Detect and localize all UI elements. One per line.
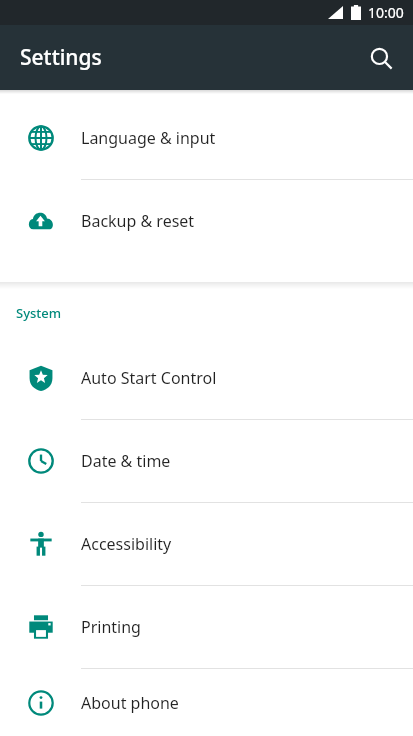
staticText: Auto Start Control (81, 367, 217, 389)
staticText: Printing (81, 616, 141, 638)
button[interactable]: Date & time (0, 420, 413, 502)
button[interactable]: Backup & reset (0, 180, 413, 262)
button[interactable]: About phone (0, 669, 413, 736)
staticText: Backup & reset (81, 210, 195, 232)
button[interactable]: Search (357, 34, 405, 82)
staticText: Settings (20, 43, 102, 72)
staticText: Date & time (81, 450, 171, 472)
staticText: System (16, 304, 62, 322)
staticText: About phone (81, 692, 179, 714)
staticText: Accessibility (81, 533, 172, 555)
button[interactable]: Accessibility (0, 503, 413, 585)
staticText: Language & input (81, 127, 216, 149)
button[interactable]: Printing (0, 586, 413, 668)
staticText: 10:00 (368, 3, 404, 22)
button[interactable]: Language & input (0, 97, 413, 179)
button[interactable]: Auto Start Control (0, 337, 413, 419)
